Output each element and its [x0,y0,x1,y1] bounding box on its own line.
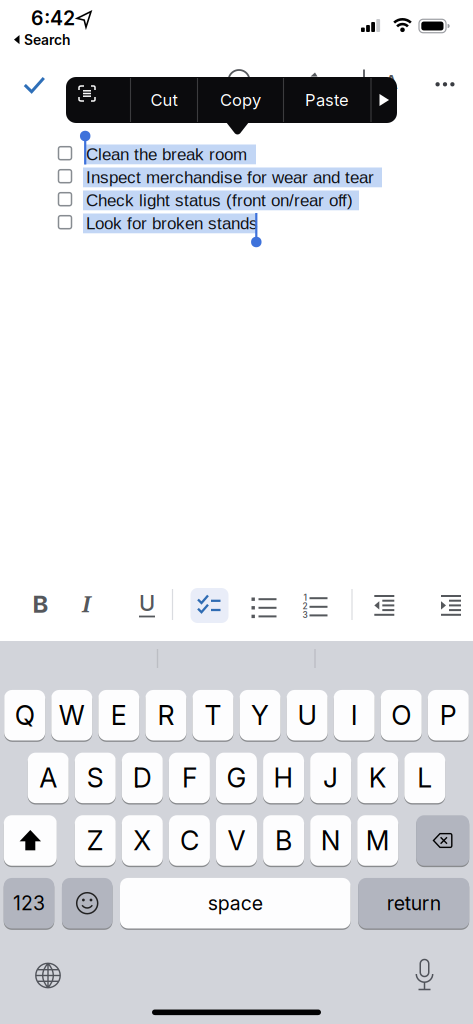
button[interactable]: H [263,752,304,804]
staticText: 6:42 [31,6,75,30]
button[interactable]: V [216,814,257,867]
button[interactable]: Z [75,814,116,867]
staticText: X [133,824,151,857]
staticText: Inspect merchandise for wear and tear [86,168,374,187]
button[interactable]: Checkbox [58,170,71,183]
button[interactable]: Dictate [411,956,437,994]
button[interactable]: Y [240,689,281,741]
staticText: A [39,762,57,794]
staticText: 3 [302,610,307,620]
button[interactable]: M [357,814,398,867]
button[interactable]: J [310,752,351,804]
staticText: space [208,891,263,915]
staticText: L [417,762,432,794]
staticText: return [387,891,441,915]
button[interactable]: I [334,689,375,741]
button[interactable]: Numbered list [302,592,327,616]
staticText: M [366,824,390,857]
button[interactable]: Checkbox [58,147,71,160]
button[interactable]: Bold [20,585,60,623]
button[interactable]: P [428,689,469,741]
button[interactable]: Paste [288,83,366,117]
button[interactable]: T [192,689,233,741]
staticText: S [87,762,104,794]
staticText: O [391,699,411,731]
button[interactable]: Shift [4,814,57,867]
button[interactable]: return [358,877,469,929]
staticText: J [323,762,338,794]
button[interactable]: Emoji [62,877,112,929]
button[interactable]: 123 [4,877,54,929]
staticText: 2 [302,601,307,611]
staticText: Paste [305,90,349,110]
button[interactable]: L [404,752,445,804]
button[interactable]: K [357,752,398,804]
staticText: Clean the break room [86,145,247,164]
staticText: B [32,589,48,618]
staticText: V [227,824,245,857]
staticText: Z [87,824,104,857]
button[interactable]: Copy [202,83,278,117]
button[interactable]: A [28,752,69,804]
staticText: Check light status (front on/rear off) [86,191,353,210]
button[interactable]: Scan text [78,85,118,115]
button[interactable]: space [120,877,351,929]
staticText: C [180,824,199,857]
staticText: Search [24,32,70,48]
button[interactable]: Cut [134,83,194,117]
staticText: 1 [303,593,306,603]
staticText: Cut [150,90,177,110]
button[interactable]: W [51,689,92,741]
button[interactable]: E [98,689,139,741]
staticText: U [298,699,317,731]
staticText: R [157,699,174,731]
button[interactable]: Delete [416,814,469,867]
button[interactable]: D [122,752,163,804]
button[interactable]: U [287,689,328,741]
button[interactable]: More menu items [379,94,389,106]
button[interactable]: S [75,752,116,804]
staticText: U [139,590,155,616]
button[interactable]: Checkbox [58,216,71,229]
staticText: P [440,699,457,731]
staticText: B [275,824,292,857]
staticText: A [384,70,397,93]
button[interactable]: X [122,814,163,867]
staticText: T [204,699,221,731]
button[interactable]: Bulleted list [251,593,276,615]
button[interactable]: Increase indent [441,595,461,616]
button[interactable]: B [263,814,304,867]
button[interactable]: N [310,814,351,867]
staticText: W [59,699,85,731]
staticText: G [226,762,246,794]
button[interactable]: Checklist [190,588,228,623]
button[interactable]: C [169,814,210,867]
button[interactable]: Next keyboard [33,960,63,990]
button[interactable]: Checkbox [58,193,71,206]
button[interactable]: Q [4,689,45,741]
staticText: Copy [220,90,261,110]
staticText: Q [15,699,35,731]
staticText: K [369,762,387,794]
staticText: D [133,762,152,794]
button[interactable]: Underline [127,586,167,624]
staticText: Y [251,699,269,731]
button[interactable]: F [169,752,210,804]
button[interactable]: G [216,752,257,804]
button[interactable]: O [381,689,422,741]
staticText: H [274,762,294,794]
staticText: I [82,589,91,619]
staticText: Look for broken stands [86,214,258,233]
button[interactable]: Italic [66,585,106,623]
staticText: E [111,699,127,731]
staticText: N [321,824,341,857]
button[interactable]: Done [22,75,47,95]
staticText: F [182,762,197,794]
staticText: 123 [13,891,45,915]
button[interactable]: R [145,689,186,741]
button[interactable]: Decrease indent [374,595,394,616]
button[interactable]: More options [430,74,460,94]
staticText: I [351,699,358,731]
button[interactable]: Back to Search [14,32,70,48]
